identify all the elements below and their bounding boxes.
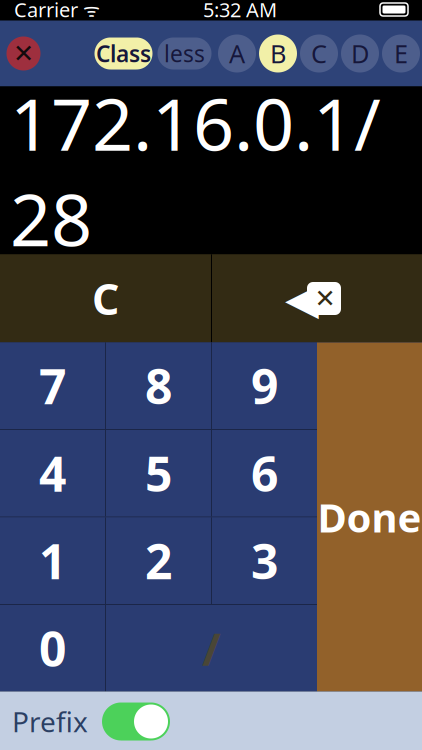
button[interactable]: Class — [94, 37, 152, 69]
staticText: C — [92, 270, 119, 327]
button[interactable]: A — [216, 34, 257, 72]
button[interactable]: Prefix toggle, on — [102, 702, 170, 740]
staticText: 8 — [145, 354, 172, 418]
staticText: 7 — [39, 354, 66, 418]
button[interactable]: 5 — [106, 430, 211, 516]
button[interactable]: Close — [6, 36, 40, 70]
button[interactable]: 8 — [106, 342, 211, 429]
staticText: B — [270, 37, 286, 70]
button[interactable]: 6 — [212, 430, 317, 516]
staticText: E — [394, 37, 408, 70]
button[interactable]: 9 — [212, 342, 317, 429]
button[interactable]: 1 — [0, 517, 105, 604]
staticText: D — [351, 37, 369, 70]
staticText: 6 — [251, 441, 278, 505]
staticText: Carrier — [14, 0, 78, 23]
staticText: 3 — [251, 529, 278, 593]
staticText: ◀ — [285, 273, 319, 323]
staticText: A — [229, 37, 245, 70]
staticText: less — [164, 38, 205, 68]
button[interactable]: 7 — [0, 342, 105, 429]
button[interactable]: less — [157, 37, 211, 69]
staticText: 172.16.0.1/28 — [10, 75, 381, 266]
staticText: Done — [317, 490, 421, 543]
staticText: / — [202, 618, 221, 678]
staticText: ᯤ — [78, 0, 100, 22]
staticText: Class — [96, 38, 151, 68]
button[interactable]: D — [339, 34, 380, 72]
button[interactable]: E — [380, 34, 421, 72]
button[interactable]: 3 — [212, 517, 317, 604]
staticText: ✕ — [314, 284, 335, 313]
staticText: 0 — [39, 616, 66, 680]
staticText: Prefix — [12, 703, 88, 740]
staticText: 4 — [39, 441, 66, 505]
button[interactable]: 2 — [106, 517, 211, 604]
button[interactable]: 4 — [0, 430, 105, 516]
button[interactable]: 0 — [0, 605, 105, 691]
staticText: 1 — [39, 529, 66, 593]
button[interactable]: Slash — [106, 605, 317, 691]
button[interactable]: Done — [317, 342, 422, 691]
button[interactable]: C — [298, 34, 339, 72]
staticText: 9 — [251, 354, 278, 418]
staticText: C — [311, 37, 327, 70]
staticText: 5:32 AM — [203, 0, 277, 23]
staticText: 5 — [145, 441, 172, 505]
button[interactable]: Delete — [212, 254, 422, 342]
button[interactable]: C — [0, 254, 211, 342]
staticText: 2 — [145, 529, 172, 593]
staticText: ✕ — [13, 39, 34, 68]
button[interactable]: B — [257, 34, 298, 72]
